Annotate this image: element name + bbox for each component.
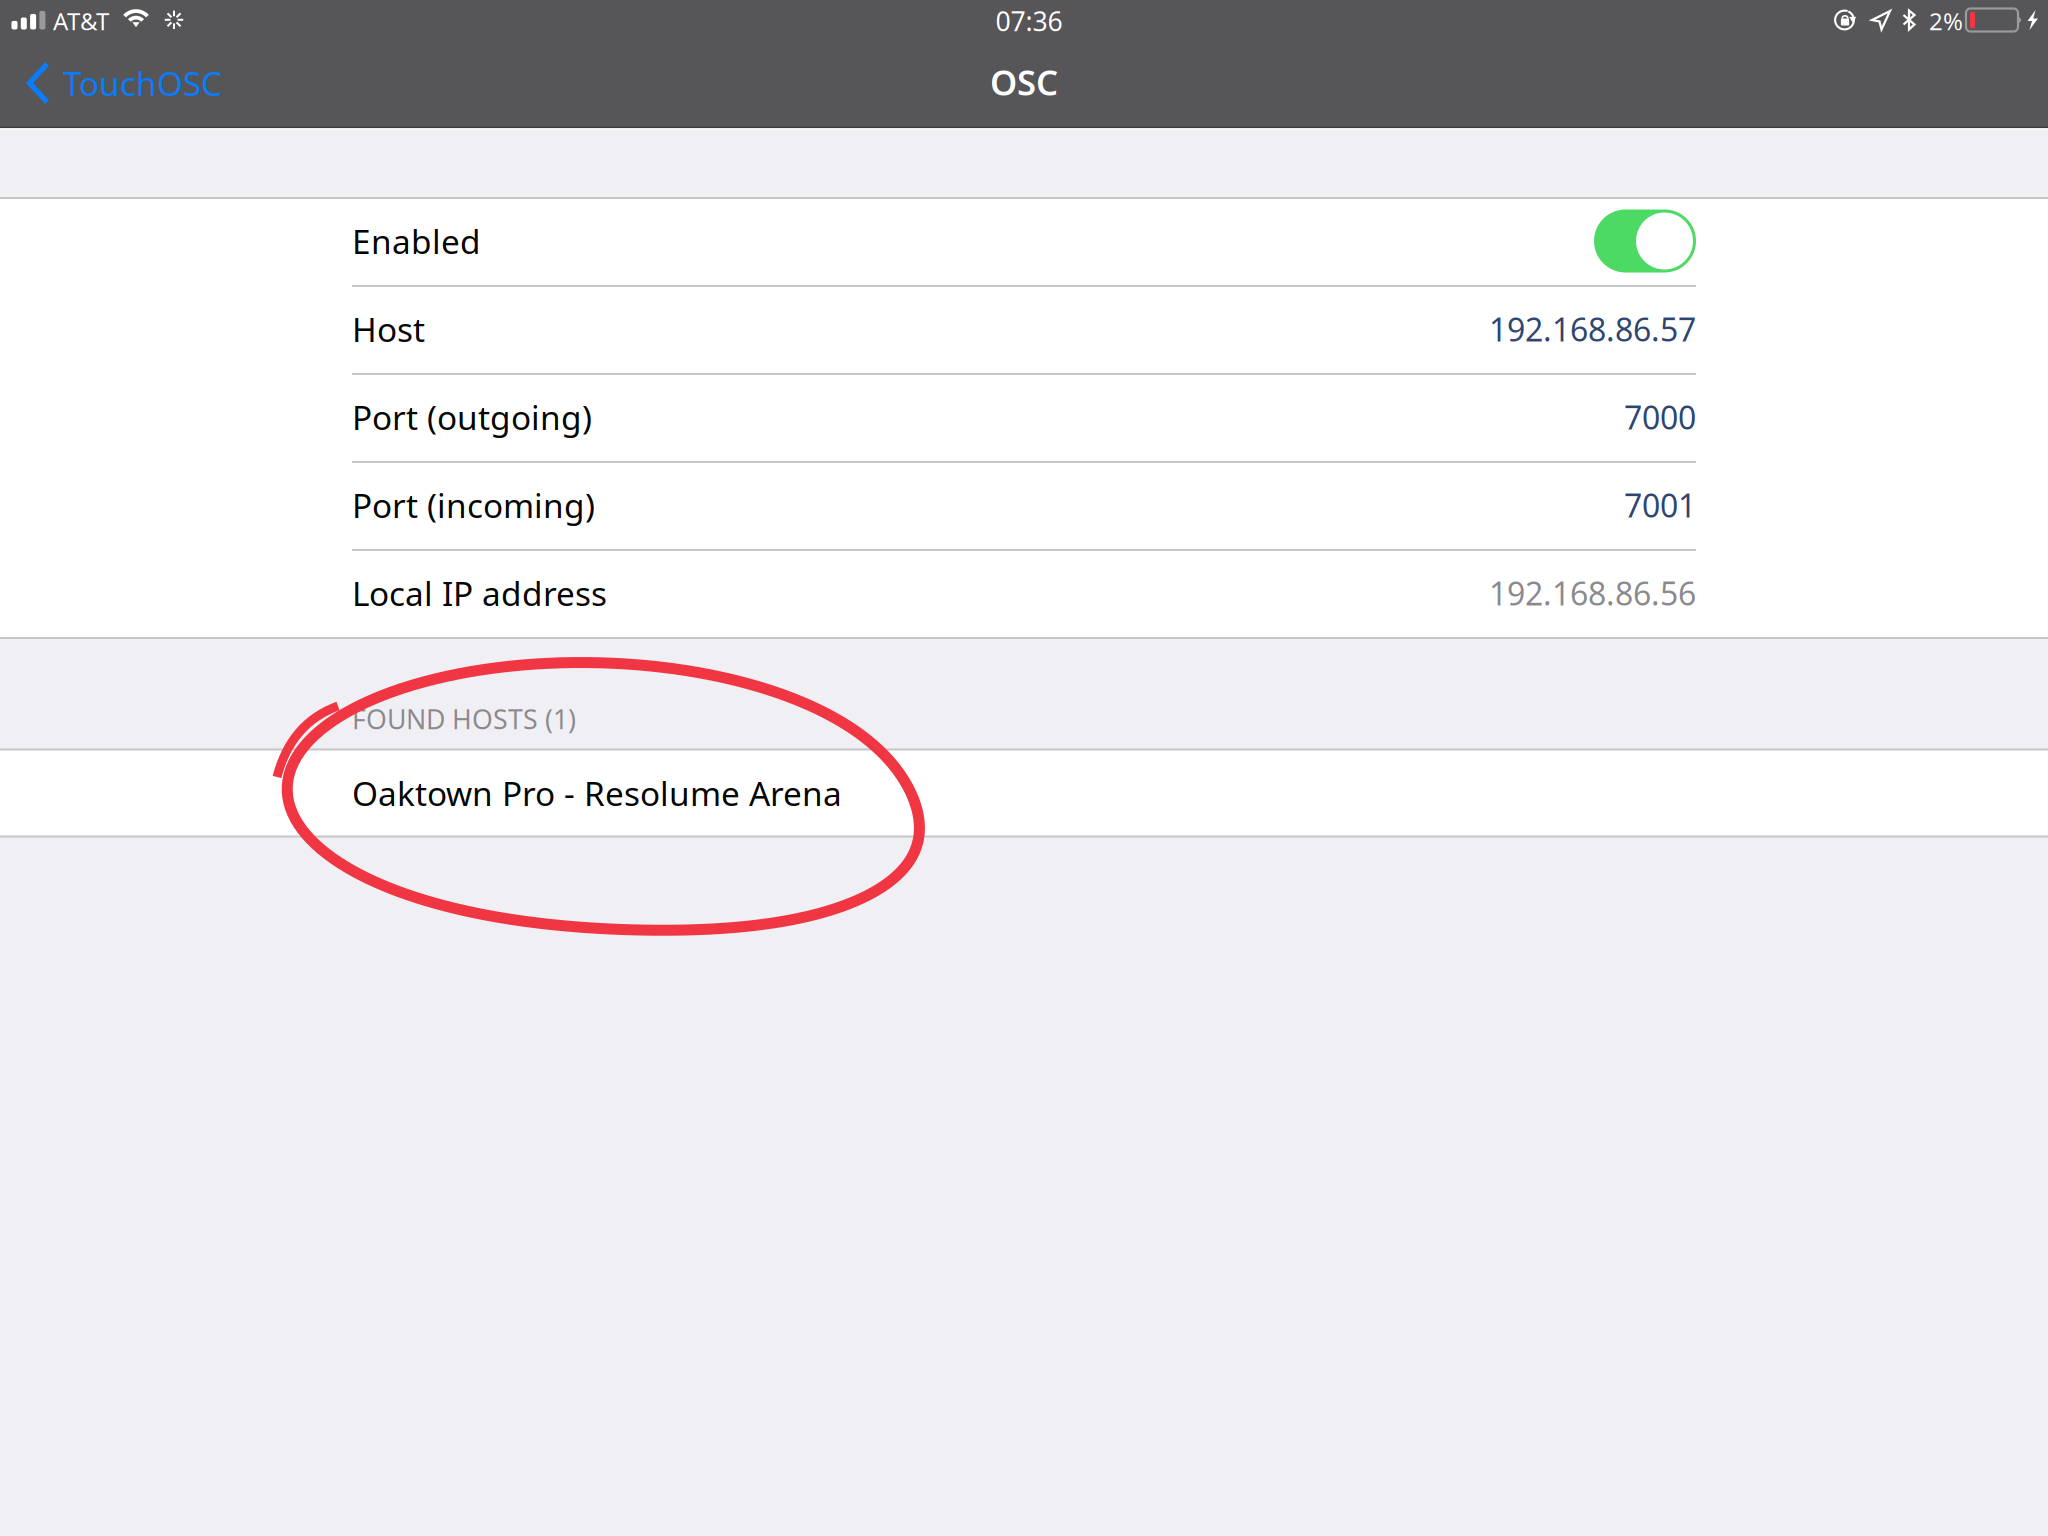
button[interactable]: Port (outgoing)	[0, 373, 2048, 461]
staticText: AT&T	[53, 5, 109, 37]
staticText: 07:36	[995, 3, 1062, 39]
button[interactable]: Local IP address	[0, 549, 2048, 637]
staticText: 7000	[1624, 396, 1696, 438]
button[interactable]: Port (incoming)	[0, 461, 2048, 549]
staticText: FOUND HOSTS (1)	[352, 701, 576, 737]
staticText: Port (incoming)	[352, 483, 595, 527]
staticText: Host	[352, 307, 425, 351]
staticText: Enabled	[352, 219, 481, 263]
staticText: Local IP address	[352, 571, 607, 615]
staticText: TouchOSC	[63, 61, 222, 105]
button[interactable]: Oaktown Pro - Resolume Arena	[0, 749, 2048, 836]
button[interactable]: Host	[0, 285, 2048, 373]
button[interactable]: Back to TouchOSC	[0, 43, 246, 123]
staticText: 7001	[1624, 484, 1696, 526]
staticText: 192.168.86.57	[1489, 308, 1696, 350]
button[interactable]: Enabled	[0, 197, 2048, 285]
staticText: 2%	[1929, 5, 1963, 37]
staticText: Oaktown Pro - Resolume Arena	[352, 771, 842, 815]
staticText: 192.168.86.56	[1489, 572, 1696, 614]
staticText: OSC	[990, 59, 1058, 105]
staticText: Port (outgoing)	[352, 395, 592, 439]
